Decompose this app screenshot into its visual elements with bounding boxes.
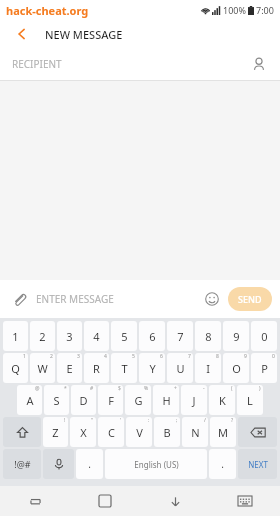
button[interactable]: Emoji [201, 288, 223, 310]
staticText: M [218, 425, 228, 440]
button[interactable]: ENTER MESSAGE [36, 292, 201, 306]
staticText: $ [118, 385, 121, 392]
button[interactable]: F [98, 385, 123, 415]
staticText: 0 [272, 353, 275, 360]
button[interactable]: 5 [111, 321, 137, 351]
button[interactable]: R [84, 353, 109, 383]
button[interactable]: T [111, 353, 137, 383]
staticText: Y [149, 361, 156, 376]
button[interactable]: SEND [228, 287, 272, 311]
staticText: 8 [205, 329, 212, 344]
staticText: 2 [50, 353, 53, 360]
button[interactable]: P [251, 353, 277, 383]
staticText: @ [35, 385, 40, 392]
staticText: ? [231, 417, 234, 424]
button[interactable]: Q [3, 353, 28, 383]
button[interactable]: 7 [167, 321, 193, 351]
button[interactable]: . [76, 449, 103, 479]
button[interactable]: 6 [139, 321, 165, 351]
button[interactable]: K [209, 385, 235, 415]
staticText: 3 [77, 353, 80, 360]
staticText: # [90, 385, 94, 392]
button[interactable]: RECIPIENT [0, 48, 280, 80]
button[interactable]: 8 [195, 321, 221, 351]
button[interactable]: 4 [84, 321, 109, 351]
staticText: 8 [216, 353, 219, 360]
staticText: RECIPIENT [12, 57, 62, 71]
staticText: C [108, 425, 115, 440]
staticText: English (US) [134, 459, 179, 470]
staticText: Z [52, 425, 59, 440]
button[interactable]: Shift [3, 417, 41, 447]
button[interactable]: 2 [30, 321, 55, 351]
button[interactable]: Recents [0, 486, 70, 516]
button[interactable]: !@# [3, 449, 41, 479]
staticText: hack-cheat.org [6, 3, 89, 18]
staticText: B [163, 425, 171, 440]
staticText: O [232, 361, 241, 376]
staticText: Q [11, 361, 20, 376]
button[interactable]: N [182, 417, 208, 447]
button[interactable]: Home [70, 486, 140, 516]
staticText: !@# [14, 458, 31, 470]
staticText: A [26, 393, 34, 408]
staticText: D [79, 393, 88, 408]
button[interactable]: 3 [57, 321, 82, 351]
staticText: + [174, 385, 177, 392]
staticText: 5 [132, 353, 135, 360]
staticText: 4 [104, 353, 107, 360]
staticText: 1 [23, 353, 26, 360]
button[interactable]: Y [139, 353, 165, 383]
staticText: 7 [188, 353, 191, 360]
staticText: L [247, 393, 253, 408]
staticText: % [144, 385, 149, 392]
staticText: SEND [238, 293, 262, 305]
staticText: 6 [149, 329, 156, 344]
button[interactable]: 9 [223, 321, 249, 351]
button[interactable]: G [125, 385, 151, 415]
staticText: N [191, 425, 200, 440]
staticText: I [206, 361, 210, 376]
button[interactable]: Keyboard settings [210, 486, 280, 516]
button[interactable]: Hide keyboard [140, 486, 210, 516]
button[interactable]: C [98, 417, 124, 447]
button[interactable]: English (US) [105, 449, 207, 479]
button[interactable]: V [126, 417, 152, 447]
button[interactable]: E [57, 353, 82, 383]
button[interactable]: . [209, 449, 236, 479]
button[interactable]: L [237, 385, 263, 415]
button[interactable]: Back [12, 24, 32, 44]
staticText: 2 [39, 329, 46, 344]
button[interactable]: Voice input [43, 449, 74, 479]
button[interactable]: J [181, 385, 207, 415]
staticText: V [136, 425, 143, 440]
button[interactable]: NEXT [238, 449, 277, 479]
staticText: 9 [244, 353, 247, 360]
staticText: / [204, 417, 206, 424]
button[interactable]: I [195, 353, 221, 383]
staticText: T [121, 361, 128, 376]
button[interactable]: Attach [8, 288, 30, 310]
button[interactable]: X [70, 417, 96, 447]
button[interactable]: M [210, 417, 236, 447]
button[interactable]: U [167, 353, 193, 383]
staticText: 4 [93, 329, 100, 344]
staticText: F [108, 393, 114, 408]
button[interactable]: 0 [251, 321, 277, 351]
button[interactable]: A [17, 385, 42, 415]
button[interactable]: Backspace [238, 417, 277, 447]
staticText: * [64, 385, 67, 392]
button[interactable]: S [44, 385, 69, 415]
button[interactable]: Add contact [248, 53, 270, 75]
button[interactable]: B [154, 417, 180, 447]
button[interactable]: W [30, 353, 55, 383]
button[interactable]: 1 [3, 321, 28, 351]
staticText: 6 [160, 353, 163, 360]
button[interactable]: H [153, 385, 179, 415]
button[interactable]: O [223, 353, 249, 383]
staticText: X [80, 425, 87, 440]
staticText: : [148, 417, 150, 424]
button[interactable]: Z [43, 417, 68, 447]
staticText: E [66, 361, 73, 376]
button[interactable]: D [71, 385, 96, 415]
